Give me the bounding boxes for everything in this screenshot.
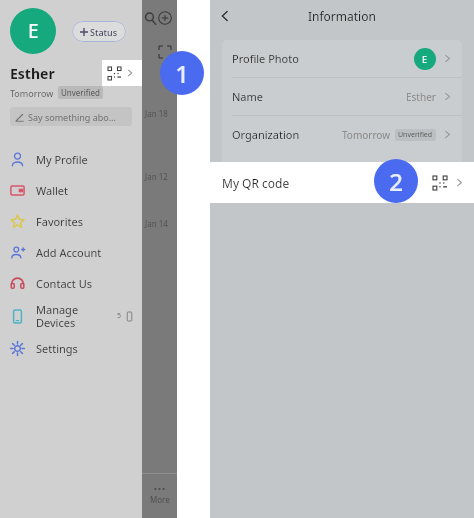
staticText: 1 xyxy=(175,57,189,90)
staticText: Add Account xyxy=(36,245,102,260)
staticText: Settings xyxy=(36,341,78,356)
button[interactable]: Settings xyxy=(0,333,142,364)
button[interactable]: My QR code xyxy=(210,162,474,203)
staticText: Manage Devices xyxy=(36,302,79,330)
staticText: Organization xyxy=(232,127,300,142)
button[interactable]: My Profile xyxy=(0,144,142,175)
staticText: Unverified xyxy=(398,130,433,140)
staticText: E xyxy=(28,18,39,44)
staticText: Name xyxy=(232,89,264,104)
staticText: 2 xyxy=(389,165,403,198)
button[interactable]: Profile Photo xyxy=(222,40,462,77)
button[interactable]: More xyxy=(142,474,177,518)
button[interactable]: Name xyxy=(222,78,462,115)
staticText: Tomorrow xyxy=(10,87,54,99)
button[interactable]: Wallet xyxy=(0,175,142,206)
button[interactable]: Say something abo… xyxy=(10,107,132,126)
staticText: Status xyxy=(90,26,118,38)
button[interactable]: My QR code xyxy=(102,60,142,86)
staticText: Information xyxy=(308,8,376,24)
button[interactable]: Favorites xyxy=(0,206,142,237)
button[interactable]: Organization xyxy=(222,116,462,153)
staticText: Jan 14 xyxy=(145,218,168,229)
button[interactable]: Contact Us xyxy=(0,268,142,299)
staticText: Jan 12 xyxy=(145,171,168,182)
staticText: Esther xyxy=(10,64,55,83)
staticText: My QR code xyxy=(222,175,290,191)
staticText: Esther xyxy=(406,90,436,104)
staticText: Profile Photo xyxy=(232,51,299,66)
staticText: Favorites xyxy=(36,214,83,229)
button[interactable]: Manage Devices xyxy=(0,299,142,333)
staticText: Wallet xyxy=(36,183,69,198)
staticText: 5 xyxy=(117,311,122,321)
button[interactable]: Back xyxy=(210,1,240,31)
staticText: Say something abo… xyxy=(28,111,116,123)
staticText: Unverified xyxy=(61,87,100,98)
button[interactable]: Status xyxy=(72,21,126,42)
staticText: My Profile xyxy=(36,152,88,167)
staticText: Tomorrow xyxy=(342,128,391,142)
staticText: More xyxy=(150,494,170,505)
button[interactable]: Add Account xyxy=(0,237,142,268)
staticText: Jan 18 xyxy=(145,108,168,119)
staticText: Contact Us xyxy=(36,276,92,291)
button[interactable]: E xyxy=(10,8,56,54)
staticText: E xyxy=(422,53,428,65)
